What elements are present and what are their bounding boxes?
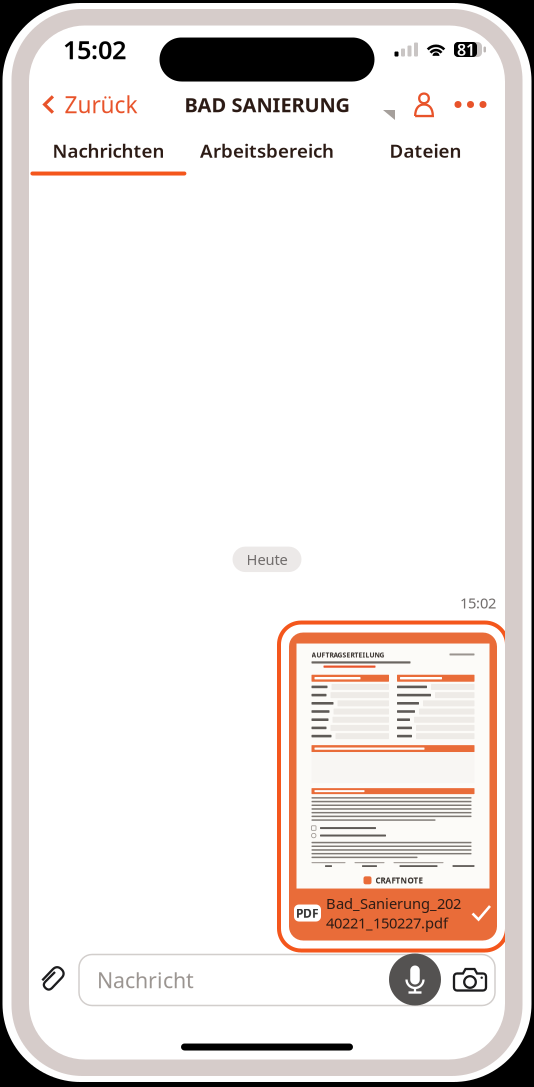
staticText: 15:02 — [460, 593, 496, 613]
staticText: CRAFTNOTE — [375, 875, 422, 886]
staticText: Nachrichten — [52, 138, 164, 163]
button[interactable]: Dateien — [346, 129, 505, 175]
button[interactable]: Camera — [452, 963, 488, 995]
button[interactable]: More options — [446, 87, 491, 122]
staticText: Arbeitsbereich — [200, 138, 334, 163]
staticText: BAD SANIERUNG — [184, 91, 349, 118]
button[interactable]: AUFTRAGSERTEILUNG — [279, 622, 507, 950]
button[interactable]: Participants — [402, 86, 446, 122]
staticText: Nachricht — [97, 966, 194, 994]
staticText: 81 — [457, 39, 475, 60]
button[interactable]: Nachrichten — [29, 129, 188, 175]
staticText: AUFTRAGSERTEILUNG — [311, 650, 384, 659]
button[interactable]: Record voice message — [389, 953, 441, 1005]
button[interactable]: Attach file — [32, 960, 72, 1000]
button[interactable]: Arbeitsbereich — [188, 129, 346, 175]
staticText: Dateien — [390, 138, 462, 163]
button[interactable]: BAD SANIERUNG — [184, 85, 349, 124]
staticText: Zurück — [64, 89, 137, 119]
staticText: Heute — [246, 550, 287, 569]
staticText: 40221_150227.pdf — [326, 913, 448, 932]
staticText: PDF — [296, 905, 319, 921]
button[interactable]: Zurück — [43, 81, 145, 127]
staticText: 15:02 — [63, 33, 126, 66]
staticText: Bad_Sanierung_202 — [326, 893, 461, 913]
